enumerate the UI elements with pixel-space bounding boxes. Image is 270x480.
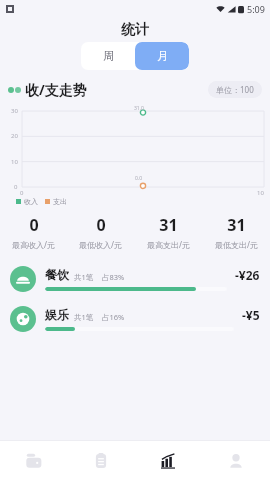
staticText: 单位：100 bbox=[216, 84, 254, 95]
staticText: 娱乐 bbox=[45, 307, 69, 322]
button[interactable]: 月 bbox=[135, 42, 189, 70]
staticText: 最高支出/元 bbox=[147, 239, 190, 250]
staticText: 10 bbox=[257, 189, 264, 197]
staticText: 0 bbox=[96, 214, 106, 236]
button[interactable]: 娱乐 bbox=[0, 304, 270, 334]
button[interactable]: Records bbox=[67, 441, 134, 480]
button[interactable]: 周 bbox=[81, 42, 135, 70]
staticText: 共1笔 bbox=[74, 272, 94, 282]
staticText: 20 bbox=[11, 132, 18, 140]
button[interactable]: Profile bbox=[202, 441, 270, 480]
button[interactable]: Statistics bbox=[134, 441, 202, 480]
staticText: 0 bbox=[29, 214, 39, 236]
button[interactable]: Wallet bbox=[0, 441, 67, 480]
staticText: -¥26 bbox=[235, 267, 260, 283]
staticText: 最低收入/元 bbox=[79, 239, 122, 250]
staticText: 31.0 bbox=[134, 105, 144, 112]
staticText: 月 bbox=[157, 49, 168, 63]
staticText: 最高收入/元 bbox=[12, 239, 55, 250]
staticText: 统计 bbox=[121, 21, 149, 39]
staticText: 0 bbox=[20, 189, 24, 197]
button[interactable]: 餐饮 bbox=[0, 264, 270, 294]
staticText: 餐饮 bbox=[45, 267, 69, 282]
staticText: 0.0 bbox=[135, 175, 143, 182]
staticText: -¥5 bbox=[242, 307, 260, 323]
staticText: 收入 bbox=[24, 197, 38, 206]
staticText: 占16% bbox=[102, 312, 125, 322]
staticText: 31 bbox=[227, 214, 246, 236]
staticText: 5:09 bbox=[247, 3, 265, 15]
staticText: 共1笔 bbox=[74, 312, 94, 322]
staticText: 10 bbox=[11, 158, 18, 166]
staticText: 最低支出/元 bbox=[215, 239, 258, 250]
staticText: 收/支走势 bbox=[25, 80, 87, 99]
staticText: 占83% bbox=[102, 272, 125, 282]
staticText: 30 bbox=[11, 107, 18, 115]
staticText: 周 bbox=[103, 49, 114, 63]
staticText: 0 bbox=[14, 183, 18, 191]
staticText: 31 bbox=[159, 214, 178, 236]
staticText: 支出 bbox=[53, 197, 67, 206]
